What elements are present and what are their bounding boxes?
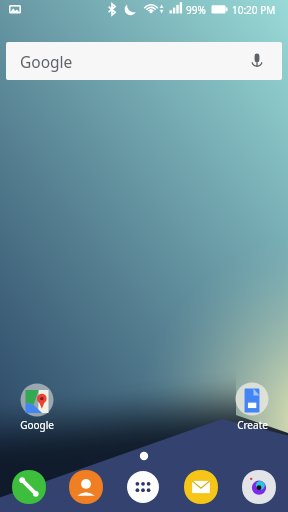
- staticText: 10:20 PM: [232, 3, 276, 17]
- button[interactable]: Phone: [0, 462, 57, 512]
- button[interactable]: Apps: [114, 462, 172, 512]
- staticText: Google: [20, 51, 73, 72]
- staticText: Google: [20, 418, 54, 432]
- staticText: 99%: [186, 3, 206, 17]
- staticText: Create: [237, 418, 268, 432]
- button[interactable]: Google: [8, 380, 66, 432]
- button[interactable]: Camera: [230, 462, 288, 512]
- button[interactable]: Create: [223, 380, 281, 432]
- button[interactable]: Contacts: [57, 462, 114, 512]
- button[interactable]: Google: [6, 42, 282, 80]
- button[interactable]: Email: [172, 462, 230, 512]
